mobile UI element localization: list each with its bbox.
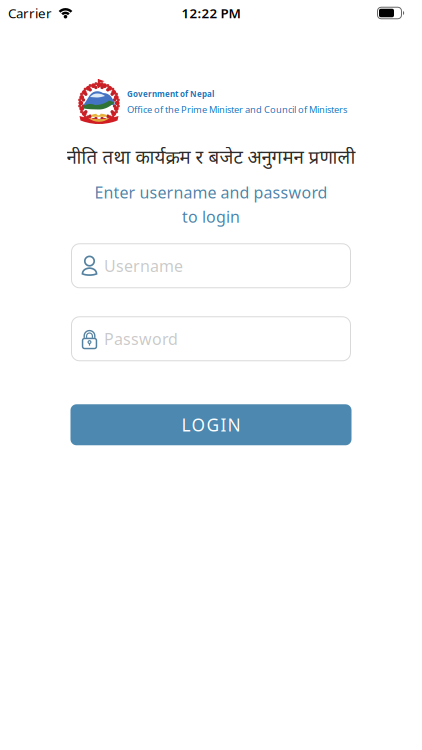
button[interactable]: Username <box>71 243 351 288</box>
staticText: Carrier <box>8 4 52 22</box>
staticText: Government of Nepal <box>127 88 214 99</box>
staticText: Office of the Prime Minister and Council… <box>127 103 347 115</box>
button[interactable]: Password <box>71 316 351 361</box>
staticText: 12:22 PM <box>181 4 240 22</box>
staticText: LOGIN <box>181 413 240 436</box>
button[interactable]: LOGIN <box>70 404 351 445</box>
staticText: नीति तथा कार्यक्रम र बजेट अनुगमन प्रणाली <box>66 144 355 169</box>
staticText: Enter username and password <box>94 182 327 203</box>
staticText: Password <box>104 328 178 349</box>
staticText: Username <box>104 255 183 276</box>
staticText: to login <box>182 206 240 227</box>
